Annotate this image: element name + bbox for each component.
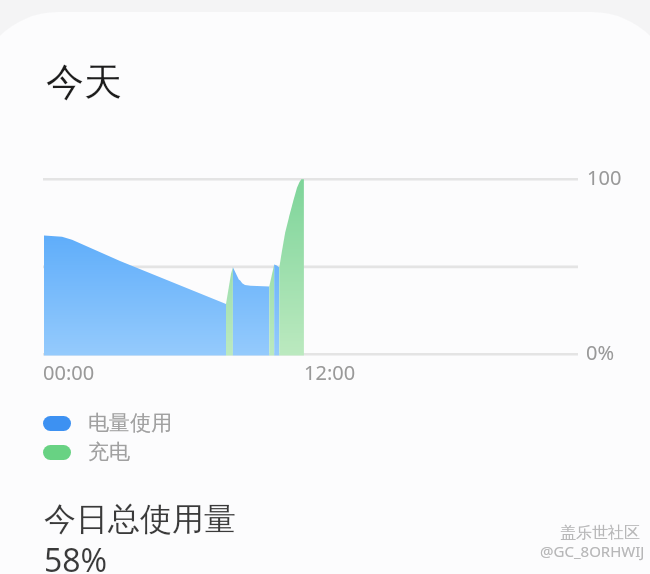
staticText: @GC_8ORHWIJ bbox=[540, 541, 645, 561]
staticText: 58% bbox=[44, 538, 108, 574]
staticText: 电量使用 bbox=[88, 410, 172, 436]
staticText: 00:00 bbox=[43, 359, 95, 386]
button[interactable]: 电量使用 bbox=[43, 410, 172, 436]
staticText: 充电 bbox=[88, 439, 130, 465]
button[interactable]: Battery usage graph bbox=[0, 150, 650, 390]
button[interactable]: 今天 bbox=[46, 58, 122, 106]
staticText: 0% bbox=[586, 339, 615, 366]
staticText: 12:00 bbox=[304, 359, 356, 386]
button[interactable]: 今日总使用量 bbox=[44, 499, 236, 539]
staticText: 今日总使用量 bbox=[44, 499, 236, 539]
button[interactable]: 充电 bbox=[43, 439, 130, 465]
staticText: 100 bbox=[587, 164, 622, 191]
staticText: 今天 bbox=[46, 58, 122, 106]
staticText: 盖乐世社区 bbox=[560, 523, 640, 543]
